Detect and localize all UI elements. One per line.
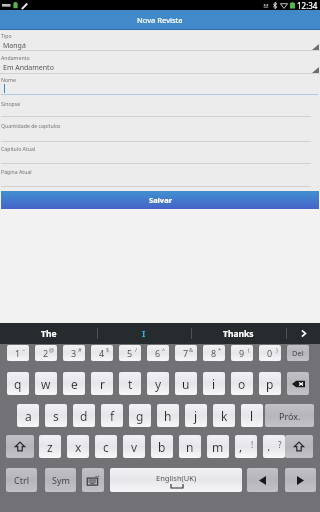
- staticText: r: [100, 376, 105, 392]
- button[interactable]: b: [151, 435, 173, 458]
- button[interactable]: Quantidade de capítulos: [0, 118, 320, 140]
- button[interactable]: j: [185, 404, 207, 427]
- button[interactable]: u: [175, 372, 197, 395]
- button[interactable]: Capítulo Atual: [0, 141, 320, 163]
- button[interactable]: Change keyboard: [82, 468, 104, 492]
- button[interactable]: 8: [203, 345, 225, 361]
- button[interactable]: Left: [247, 468, 278, 492]
- staticText: p: [266, 376, 274, 392]
- button[interactable]: 4: [91, 345, 113, 361]
- button[interactable]: e: [63, 372, 85, 395]
- staticText: h: [164, 408, 172, 424]
- staticText: ?: [278, 439, 282, 450]
- button[interactable]: x: [67, 435, 89, 458]
- button[interactable]: 1: [7, 345, 29, 361]
- button[interactable]: I: [97, 323, 191, 344]
- button[interactable]: Shift: [285, 435, 313, 458]
- staticText: m: [212, 439, 224, 455]
- staticText: k: [221, 408, 228, 424]
- staticText: w: [41, 376, 51, 392]
- button[interactable]: i: [203, 372, 225, 395]
- button[interactable]: s: [45, 404, 67, 427]
- staticText: a: [25, 408, 32, 424]
- staticText: 6: [155, 347, 161, 359]
- staticText: Mangá: [3, 41, 26, 51]
- staticText: q: [14, 376, 22, 392]
- button[interactable]: k: [213, 404, 235, 427]
- staticText: s: [53, 408, 59, 424]
- button[interactable]: Backspace: [287, 372, 309, 395]
- button[interactable]: p: [259, 372, 281, 395]
- staticText: 9: [239, 347, 245, 359]
- button[interactable]: Shift: [6, 435, 34, 458]
- button[interactable]: r: [91, 372, 113, 395]
- button[interactable]: l: [241, 404, 263, 427]
- button[interactable]: 0: [259, 345, 281, 361]
- staticText: l: [250, 408, 254, 424]
- staticText: Quantidade de capítulos: [1, 122, 61, 129]
- button[interactable]: Right: [285, 468, 316, 492]
- button[interactable]: Próx.: [265, 404, 314, 427]
- button[interactable]: t: [119, 372, 141, 395]
- staticText: e: [71, 376, 78, 392]
- staticText: Nome: [1, 76, 16, 83]
- button[interactable]: g: [129, 404, 151, 427]
- button[interactable]: Space: [110, 468, 242, 492]
- button[interactable]: 7: [175, 345, 197, 361]
- button[interactable]: d: [73, 404, 95, 427]
- button[interactable]: Tipo: [0, 30, 320, 50]
- button[interactable]: h: [157, 404, 179, 427]
- button[interactable]: ,: [235, 435, 257, 458]
- staticText: Sinopse: [1, 100, 21, 107]
- staticText: *: [218, 346, 222, 353]
- staticText: c: [103, 439, 109, 455]
- button[interactable]: Sym: [45, 468, 76, 492]
- button[interactable]: v: [123, 435, 145, 458]
- button[interactable]: Nome: [0, 74, 320, 95]
- staticText: ,: [239, 438, 243, 454]
- staticText: ): [276, 346, 278, 353]
- staticText: ~: [22, 346, 26, 353]
- staticText: g: [136, 408, 144, 424]
- button[interactable]: f: [101, 404, 123, 427]
- button[interactable]: z: [39, 435, 61, 458]
- button[interactable]: Ctrl: [6, 468, 37, 492]
- button[interactable]: a: [17, 404, 39, 427]
- button[interactable]: 5: [119, 345, 141, 361]
- staticText: Tipo: [1, 32, 12, 39]
- staticText: Em Andamento: [3, 63, 54, 73]
- staticText: Nova Revista: [137, 15, 183, 25]
- staticText: u: [182, 376, 190, 392]
- button[interactable]: Andamento: [0, 51, 320, 72]
- button[interactable]: Del: [287, 345, 309, 361]
- staticText: (: [248, 346, 250, 353]
- button[interactable]: .: [263, 435, 285, 458]
- button[interactable]: Página Atual: [0, 164, 320, 186]
- button[interactable]: 9: [231, 345, 253, 361]
- button[interactable]: Thanks: [191, 323, 286, 344]
- staticText: o: [238, 376, 246, 392]
- button[interactable]: More suggestions: [286, 323, 320, 344]
- staticText: @: [49, 346, 54, 353]
- button[interactable]: y: [147, 372, 169, 395]
- staticText: Thanks: [223, 328, 254, 340]
- staticText: Salvar: [149, 195, 172, 205]
- button[interactable]: 6: [147, 345, 169, 361]
- staticText: j: [194, 408, 198, 424]
- button[interactable]: w: [35, 372, 57, 395]
- staticText: #: [78, 346, 82, 353]
- button[interactable]: n: [179, 435, 201, 458]
- button[interactable]: Salvar: [1, 191, 319, 209]
- button[interactable]: c: [95, 435, 117, 458]
- staticText: n: [186, 439, 194, 455]
- staticText: English(UK): [156, 473, 197, 483]
- staticText: Próx.: [279, 410, 301, 422]
- button[interactable]: The: [0, 323, 97, 344]
- button[interactable]: o: [231, 372, 253, 395]
- button[interactable]: q: [7, 372, 29, 395]
- staticText: 3: [71, 347, 77, 359]
- button[interactable]: Sinopse: [0, 96, 320, 118]
- button[interactable]: m: [207, 435, 229, 458]
- button[interactable]: 2: [35, 345, 57, 361]
- button[interactable]: 3: [63, 345, 85, 361]
